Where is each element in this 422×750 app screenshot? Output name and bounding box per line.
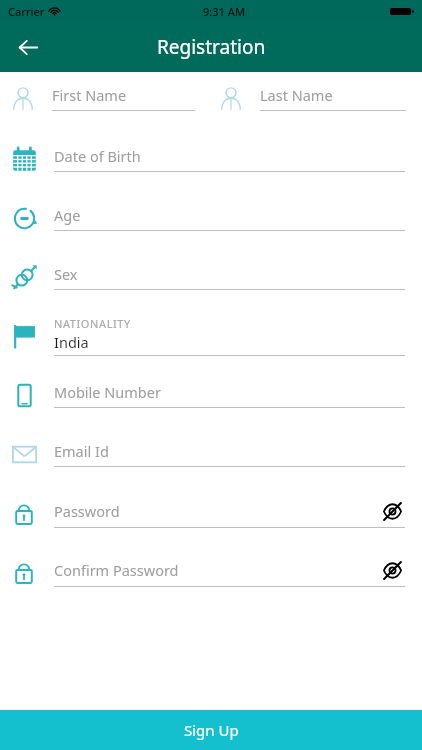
staticText: India [54,332,89,352]
staticText: NATIONALITY [54,316,131,331]
staticText: Sex [54,264,78,284]
staticText: 9:31 AM [203,4,246,19]
staticText: Date of Birth [54,146,141,166]
button[interactable]: Show password [379,498,405,524]
staticText: Email Id [54,441,109,461]
staticText: Mobile Number [54,382,161,402]
button[interactable]: Email Id [0,424,422,483]
staticText: First Name [52,85,127,105]
button[interactable]: Show password [379,557,405,583]
button[interactable]: Last Name [211,83,422,113]
staticText: Sign Up [184,720,239,740]
button[interactable]: Sign Up [0,710,422,750]
staticText: Password [54,501,379,521]
staticText: Age [54,205,81,225]
button[interactable]: First Name [0,83,211,113]
button[interactable]: Mobile Number [0,365,422,424]
button[interactable]: Date of Birth [0,129,422,188]
staticText: Last Name [260,85,333,105]
staticText: Registration [157,34,266,60]
button[interactable]: Age [0,188,422,247]
staticText: Confirm Password [54,560,379,580]
button[interactable]: Back [8,27,48,67]
button[interactable]: NATIONALITY [0,306,422,365]
staticText: Carrier [8,4,45,19]
button[interactable]: Sex [0,247,422,306]
